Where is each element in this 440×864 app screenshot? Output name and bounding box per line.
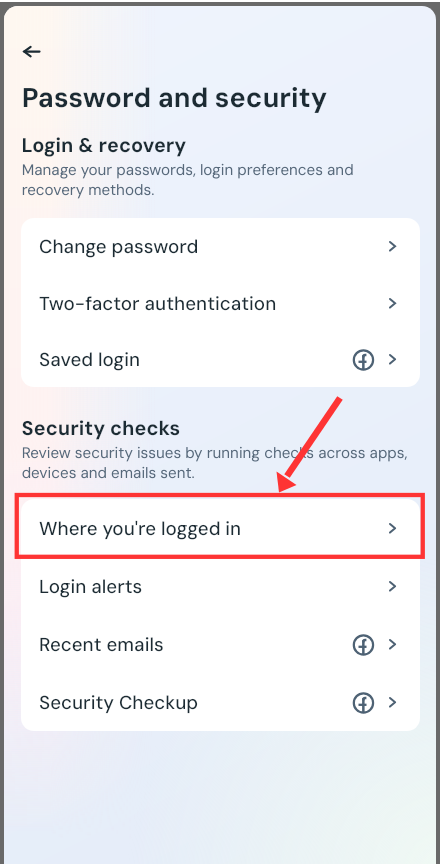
button[interactable]: Login alerts bbox=[21, 557, 420, 615]
staticText: recovery methods. bbox=[22, 180, 155, 200]
staticText: devices and emails sent. bbox=[22, 463, 196, 483]
button[interactable]: Where you're logged in bbox=[21, 499, 420, 557]
staticText: Review security issues by running checks… bbox=[22, 443, 408, 463]
staticText: Security Checkup bbox=[39, 690, 199, 714]
staticText: Recent emails bbox=[39, 632, 164, 656]
button[interactable]: Recent emails bbox=[21, 615, 420, 673]
staticText: Login & recovery bbox=[21, 132, 186, 158]
staticText: Change password bbox=[39, 234, 199, 258]
staticText: Password and security bbox=[22, 80, 328, 115]
staticText: Where you're logged in bbox=[39, 516, 242, 540]
staticText: Login alerts bbox=[39, 574, 143, 598]
button[interactable]: Two-factor authentication bbox=[21, 274, 420, 331]
button[interactable]: Change password bbox=[21, 218, 420, 274]
staticText: Manage your passwords, login preferences… bbox=[22, 160, 354, 180]
staticText: Saved login bbox=[39, 347, 141, 371]
staticText: Security checks bbox=[22, 415, 181, 441]
button[interactable]: Security Checkup bbox=[21, 673, 420, 731]
staticText: Two-factor authentication bbox=[39, 291, 277, 315]
button[interactable]: Saved login bbox=[21, 331, 420, 387]
button[interactable]: Back bbox=[10, 30, 54, 74]
